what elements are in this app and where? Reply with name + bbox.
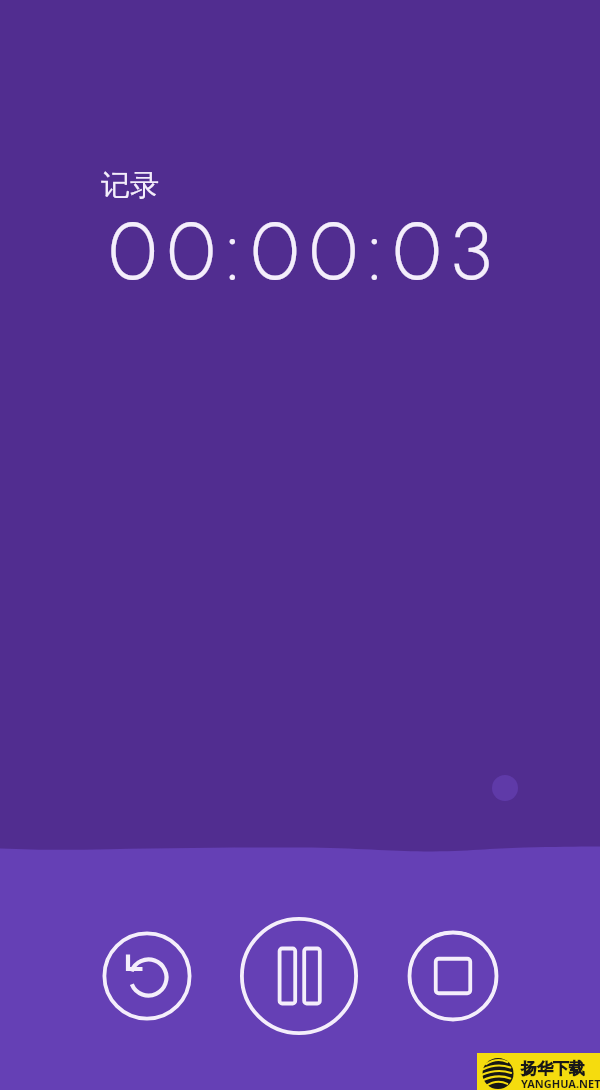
button[interactable]: Reset	[101, 930, 193, 1022]
staticText: 记录	[101, 167, 159, 204]
staticText: 00:00:03	[109, 203, 503, 299]
button[interactable]: Stop	[407, 930, 499, 1022]
button[interactable]: Pause	[239, 916, 359, 1036]
staticText: 扬华下载	[521, 1059, 585, 1079]
staticText: YANGHUA.NET	[521, 1076, 600, 1090]
